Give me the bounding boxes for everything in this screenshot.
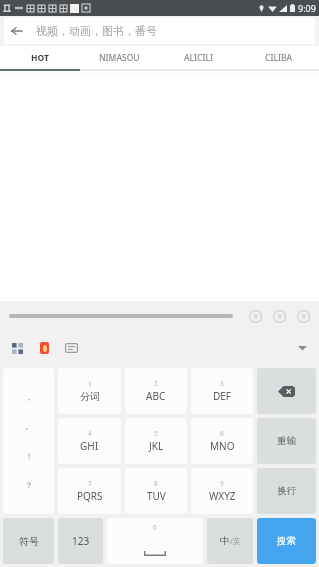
- button[interactable]: Back: [4, 18, 315, 44]
- staticText: 重输: [277, 435, 296, 447]
- staticText: ！: [25, 451, 33, 461]
- staticText: 9: [220, 479, 224, 488]
- button[interactable]: 6: [191, 418, 253, 464]
- button[interactable]: ALICILI: [159, 46, 239, 69]
- button[interactable]: HOT: [0, 46, 79, 69]
- button[interactable]: Backspace: [257, 368, 316, 414]
- other: Backspace: [278, 386, 295, 397]
- button[interactable]: Voice input: [36, 340, 52, 356]
- staticText: 视频，动画，图书，番号: [36, 24, 157, 38]
- button[interactable]: Keyboard apps: [9, 340, 25, 356]
- button[interactable]: 123: [58, 518, 103, 564]
- button[interactable]: 9: [191, 468, 253, 514]
- button[interactable]: 3: [191, 368, 253, 414]
- button[interactable]: 1: [58, 368, 121, 414]
- button[interactable]: 4: [58, 418, 121, 464]
- staticText: 123: [72, 534, 90, 548]
- staticText: 符号: [19, 535, 39, 548]
- button[interactable]: Clipboard: [63, 340, 79, 356]
- staticText: 中: [220, 535, 230, 547]
- button[interactable]: 中: [207, 518, 253, 564]
- staticText: /英: [230, 536, 241, 546]
- staticText: 4: [88, 429, 92, 438]
- staticText: 2: [154, 379, 158, 388]
- staticText: ，: [25, 392, 33, 402]
- button[interactable]: NIMASOU: [79, 46, 159, 69]
- staticText: HOT: [31, 52, 49, 64]
- button[interactable]: 符号: [3, 518, 54, 564]
- staticText: ？: [25, 480, 33, 490]
- staticText: CILIBA: [265, 52, 293, 64]
- staticText: DEF: [213, 389, 232, 403]
- button[interactable]: 换行: [257, 468, 316, 514]
- staticText: 5: [154, 429, 158, 438]
- staticText: 换行: [277, 485, 296, 497]
- staticText: ABC: [146, 389, 166, 403]
- button[interactable]: 8: [125, 468, 187, 514]
- staticText: PQRS: [77, 489, 103, 503]
- button[interactable]: 5: [125, 418, 187, 464]
- button[interactable]: 0: [107, 518, 203, 564]
- staticText: 搜索: [277, 535, 296, 547]
- button[interactable]: CILIBA: [239, 46, 319, 69]
- staticText: ALICILI: [184, 52, 214, 64]
- staticText: TUV: [147, 489, 166, 503]
- button[interactable]: 搜索: [257, 518, 316, 564]
- button[interactable]: Keyboard option 3: [297, 310, 310, 323]
- staticText: 1: [88, 380, 92, 389]
- staticText: MNO: [210, 439, 235, 453]
- staticText: 。: [25, 421, 33, 431]
- staticText: 7: [88, 479, 92, 488]
- staticText: 3: [220, 379, 224, 388]
- button[interactable]: Hide keyboard: [294, 340, 310, 356]
- button[interactable]: Back: [4, 18, 30, 44]
- staticText: GHI: [80, 439, 99, 453]
- staticText: 0: [153, 523, 157, 532]
- button[interactable]: ，: [3, 368, 54, 514]
- staticText: JKL: [149, 439, 164, 453]
- button[interactable]: 重输: [257, 418, 316, 464]
- staticText: NIMASOU: [99, 52, 140, 64]
- button[interactable]: 7: [58, 468, 121, 514]
- staticText: 6: [220, 429, 224, 438]
- button[interactable]: Keyboard option 2: [273, 310, 286, 323]
- button[interactable]: 2: [125, 368, 187, 414]
- staticText: WXYZ: [209, 489, 236, 503]
- button[interactable]: Keyboard option 1: [249, 310, 262, 323]
- staticText: 9:09: [298, 2, 316, 14]
- staticText: 分词: [80, 390, 100, 403]
- staticText: 8: [154, 479, 158, 488]
